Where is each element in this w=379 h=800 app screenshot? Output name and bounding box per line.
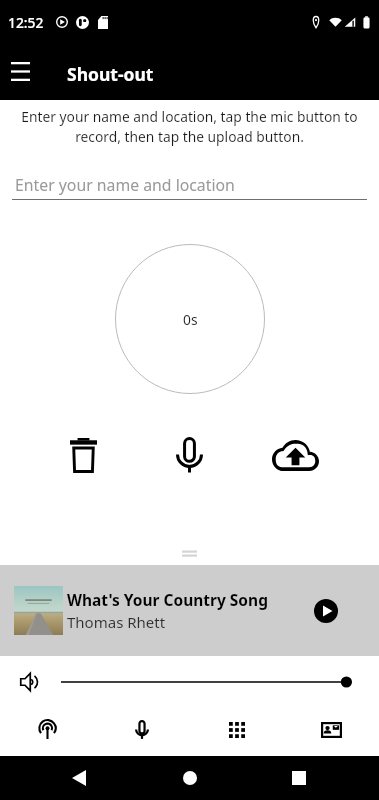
button[interactable]: Open navigation menu	[0, 42, 40, 100]
button[interactable]: Upload	[267, 427, 323, 483]
button[interactable]: What's Your Country Song	[14, 565, 341, 656]
button[interactable]: Play	[311, 596, 341, 626]
button[interactable]: Recent apps	[277, 756, 321, 800]
button[interactable]: Back	[57, 756, 101, 800]
staticText: Shout-out	[67, 62, 154, 86]
staticText: Enter your name and location, tap the mi…	[12, 107, 367, 146]
staticText: 12:52	[8, 13, 44, 32]
button[interactable]: Record	[94, 706, 189, 753]
button[interactable]: Home	[168, 756, 212, 800]
button[interactable]: Enter your name and location	[12, 174, 367, 200]
button[interactable]: Apps	[189, 706, 284, 753]
staticText: What's Your Country Song	[67, 589, 268, 610]
button[interactable]: Volume slider	[61, 670, 352, 694]
button[interactable]: Broadcast	[0, 706, 94, 753]
staticText: Thomas Rhett	[67, 612, 166, 632]
button[interactable]: Delete recording	[55, 427, 111, 483]
button[interactable]: Contacts	[284, 706, 379, 753]
staticText: Enter your name and location	[15, 174, 235, 196]
button[interactable]: Volume	[17, 670, 41, 694]
button[interactable]: Record	[161, 427, 217, 483]
staticText: 0s	[183, 310, 198, 329]
